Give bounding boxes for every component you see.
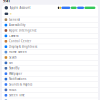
button[interactable]: Screen Time	[2, 93, 98, 98]
staticText: StandBy	[9, 66, 19, 70]
button[interactable]: Search	[2, 55, 98, 60]
button[interactable]: Focus	[2, 87, 98, 92]
staticText: Accessibility	[9, 23, 25, 27]
button[interactable]: Display & Brightness	[2, 44, 98, 49]
button[interactable]: Camera	[2, 33, 98, 38]
staticText: Camera	[9, 34, 18, 38]
staticText: Sounds & Haptics	[9, 83, 32, 86]
button[interactable]: Control Center	[2, 39, 98, 44]
button[interactable]: Home Screen	[2, 50, 98, 55]
staticText: Control Center	[9, 39, 31, 43]
button[interactable]: Privacy & Security	[2, 98, 98, 100]
staticText: Wallpaper	[9, 72, 22, 75]
staticText: Display & Brightness	[9, 45, 37, 48]
staticText: 9:41	[3, 0, 10, 3]
staticText: Home Screen	[9, 50, 27, 54]
button[interactable]: Siri	[2, 60, 98, 65]
button[interactable]: StandBy	[2, 66, 98, 71]
staticText: Apple Account	[10, 6, 31, 9]
staticText: Search	[9, 56, 17, 59]
button[interactable]: Accessibility	[2, 23, 98, 28]
staticText: Siri	[9, 61, 13, 65]
button[interactable]: Notifications	[2, 77, 98, 82]
button[interactable]: General	[2, 17, 98, 22]
staticText: Focus	[9, 88, 16, 92]
staticText: Apple Intelligence	[9, 29, 37, 32]
staticText: General	[9, 18, 20, 21]
staticText: Notifications	[9, 77, 26, 81]
button[interactable]: Wallpaper	[2, 71, 98, 76]
button[interactable]: Sounds & Haptics	[2, 82, 98, 87]
staticText: Screen Time	[9, 93, 25, 97]
button[interactable]: Apple Account	[2, 5, 98, 17]
button[interactable]: Apple Intelligence	[2, 28, 98, 33]
